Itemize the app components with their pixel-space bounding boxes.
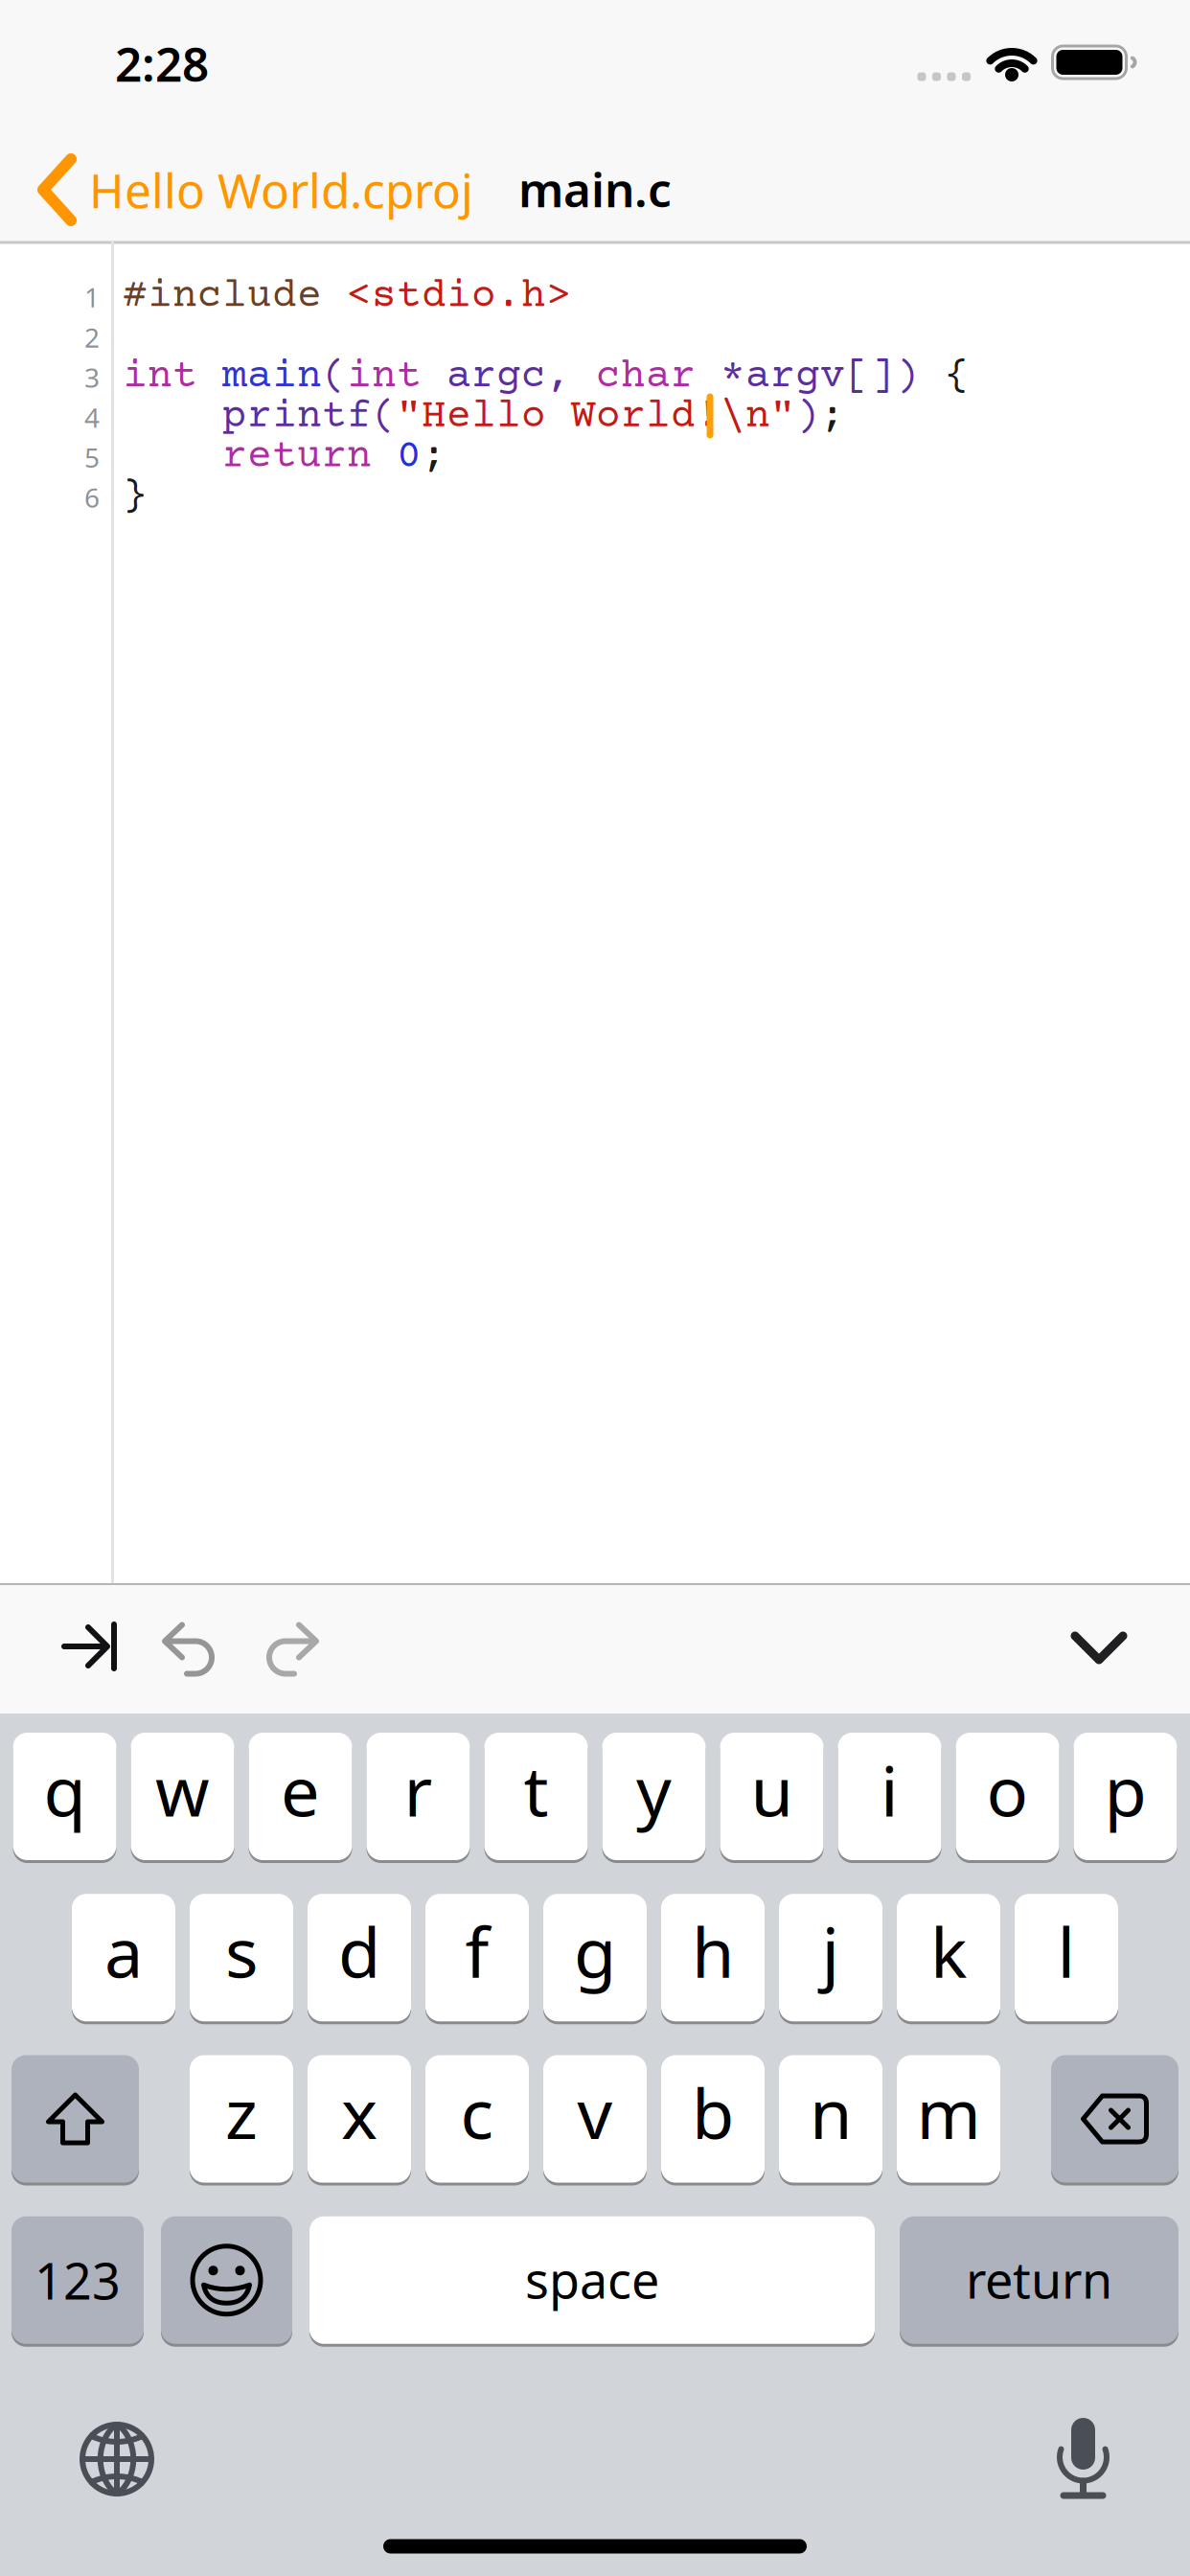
- staticText: n: [810, 2066, 852, 2158]
- staticText: 0: [397, 434, 422, 480]
- staticText: Hello World.cproj: [89, 158, 473, 221]
- staticText: (: [322, 354, 347, 400]
- staticText: main.c: [518, 157, 672, 220]
- staticText: int: [347, 354, 446, 400]
- button[interactable]: v: [543, 2054, 647, 2184]
- button[interactable]: a: [72, 1893, 175, 2023]
- staticText: q: [44, 1744, 86, 1835]
- button[interactable]: Delete: [1051, 2054, 1179, 2184]
- button[interactable]: b: [661, 2054, 765, 2184]
- button[interactable]: space: [309, 2215, 875, 2345]
- staticText: "Hello World!\n": [397, 394, 795, 440]
- staticText: b: [692, 2066, 734, 2158]
- button[interactable]: c: [425, 2054, 529, 2184]
- button[interactable]: Undo: [163, 1623, 213, 1676]
- staticText: main: [222, 354, 322, 400]
- staticText: int: [123, 354, 222, 400]
- staticText: <stdio.h>: [347, 274, 571, 320]
- button[interactable]: m: [897, 2054, 1000, 2184]
- staticText: f: [465, 1905, 489, 1997]
- staticText: ;: [820, 394, 845, 440]
- staticText: s: [225, 1905, 258, 1997]
- button[interactable]: h: [661, 1893, 765, 2023]
- staticText: {: [920, 354, 970, 400]
- staticText: h: [692, 1905, 734, 1997]
- staticText: y: [636, 1744, 672, 1835]
- button[interactable]: t: [484, 1731, 588, 1862]
- button[interactable]: Emoji: [161, 2215, 292, 2345]
- button[interactable]: Dismiss Keyboard: [1073, 1634, 1125, 1663]
- staticText: c: [460, 2066, 494, 2158]
- staticText: u: [751, 1744, 793, 1835]
- button[interactable]: z: [190, 2054, 293, 2184]
- staticText: m: [916, 2066, 981, 2158]
- button[interactable]: q: [13, 1731, 116, 1862]
- button[interactable]: return: [900, 2215, 1179, 2345]
- staticText: 5: [84, 439, 100, 475]
- button[interactable]: Shift: [11, 2054, 139, 2184]
- button[interactable]: f: [425, 1893, 529, 2023]
- staticText: return: [222, 434, 397, 480]
- staticText: }: [123, 474, 148, 520]
- staticText: 2:28: [115, 32, 209, 95]
- staticText: k: [930, 1905, 967, 1997]
- button[interactable]: d: [308, 1893, 411, 2023]
- button[interactable]: n: [779, 2054, 882, 2184]
- button[interactable]: Dictate: [1056, 2414, 1110, 2496]
- button[interactable]: s: [190, 1893, 293, 2023]
- staticText: j: [822, 1905, 840, 1997]
- staticText: 4: [84, 399, 100, 435]
- button[interactable]: w: [131, 1731, 234, 1862]
- button[interactable]: y: [602, 1731, 706, 1862]
- button[interactable]: 123: [11, 2215, 144, 2345]
- staticText: char: [596, 354, 721, 400]
- button[interactable]: Redo: [268, 1623, 318, 1676]
- staticText: [123, 434, 222, 480]
- staticText: 2: [84, 319, 100, 355]
- button[interactable]: x: [308, 2054, 411, 2184]
- staticText: l: [1057, 1905, 1076, 1997]
- staticText: 1: [84, 279, 100, 315]
- staticText: z: [225, 2066, 258, 2158]
- button[interactable]: e: [249, 1731, 352, 1862]
- staticText: 6: [84, 480, 100, 515]
- staticText: space: [525, 2246, 659, 2312]
- button[interactable]: Next Keyboard: [80, 2422, 154, 2496]
- button[interactable]: p: [1074, 1731, 1177, 1862]
- button[interactable]: r: [366, 1731, 470, 1862]
- staticText: *argv[]): [721, 354, 920, 400]
- staticText: d: [338, 1905, 380, 1997]
- staticText: return: [966, 2246, 1112, 2312]
- button[interactable]: j: [779, 1893, 882, 2023]
- staticText: v: [577, 2066, 613, 2158]
- button[interactable]: Back: [36, 153, 473, 226]
- staticText: ): [795, 394, 820, 440]
- button[interactable]: k: [897, 1893, 1000, 2023]
- button[interactable]: u: [720, 1731, 824, 1862]
- button[interactable]: g: [543, 1893, 647, 2023]
- staticText: w: [155, 1744, 210, 1835]
- staticText: t: [524, 1744, 549, 1835]
- staticText: argc: [446, 354, 546, 400]
- staticText: x: [341, 2066, 378, 2158]
- staticText: 3: [84, 359, 100, 395]
- button[interactable]: Tab: [62, 1624, 116, 1668]
- staticText: p: [1104, 1744, 1146, 1835]
- button[interactable]: o: [956, 1731, 1059, 1862]
- staticText: g: [574, 1905, 616, 1997]
- staticText: 123: [34, 2247, 121, 2313]
- staticText: e: [281, 1744, 320, 1835]
- staticText: r: [404, 1744, 433, 1835]
- staticText: a: [104, 1905, 143, 1997]
- button[interactable]: l: [1015, 1893, 1118, 2023]
- staticText: ,: [546, 354, 596, 400]
- staticText: #include: [123, 274, 347, 320]
- staticText: o: [986, 1744, 1029, 1835]
- staticText: printf(: [222, 394, 397, 440]
- staticText: ;: [422, 434, 446, 480]
- button[interactable]: i: [838, 1731, 941, 1862]
- staticText: i: [881, 1744, 899, 1835]
